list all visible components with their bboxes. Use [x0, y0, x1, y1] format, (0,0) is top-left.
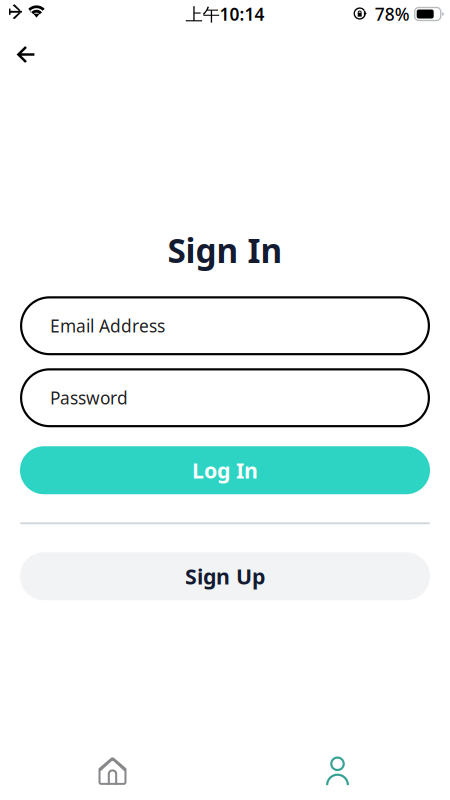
button[interactable]: Log In: [0, 446, 450, 494]
staticText: Email Address: [50, 314, 165, 337]
button[interactable]: Back: [0, 28, 49, 73]
staticText: Sign In: [167, 228, 282, 272]
button[interactable]: Sign Up: [0, 552, 450, 600]
staticText: Password: [50, 386, 128, 409]
staticText: 78%: [375, 2, 410, 25]
staticText: Log In: [192, 456, 258, 484]
staticText: Sign Up: [185, 562, 265, 590]
button[interactable]: Profile: [225, 745, 450, 797]
button[interactable]: Home: [0, 745, 225, 797]
staticText: 上午10:14: [185, 2, 264, 25]
